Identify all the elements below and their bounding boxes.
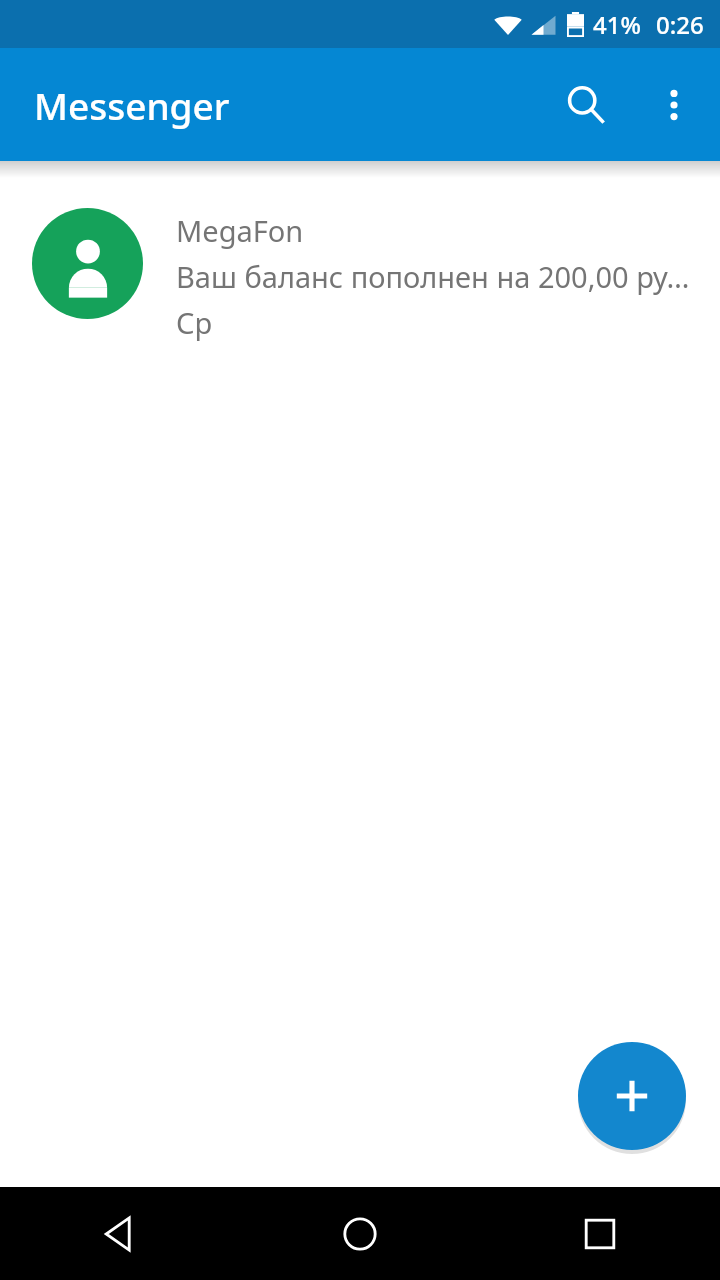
button[interactable]: New conversation <box>578 1042 686 1150</box>
button[interactable]: More options <box>630 61 718 149</box>
button[interactable]: Recents <box>480 1187 720 1280</box>
staticText: Messenger <box>34 80 230 130</box>
button[interactable]: Home <box>240 1187 480 1280</box>
button[interactable]: Back <box>0 1187 240 1280</box>
staticText: 0:26 <box>656 8 704 41</box>
button[interactable]: MegaFon <box>0 208 720 342</box>
staticText: Ср <box>176 303 213 342</box>
button[interactable]: Search <box>542 61 630 149</box>
staticText: MegaFon <box>176 211 304 250</box>
staticText: 41% <box>593 8 641 41</box>
staticText: Ваш баланс пополнен на 200,00 ру… <box>176 257 690 296</box>
